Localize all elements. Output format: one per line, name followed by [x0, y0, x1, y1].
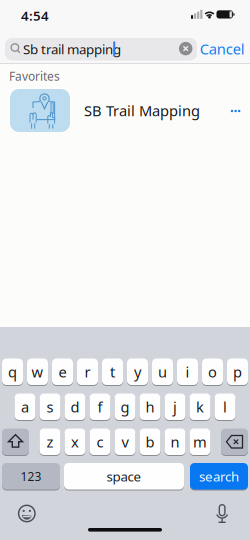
- button[interactable]: y: [127, 358, 148, 385]
- button[interactable]: x: [64, 428, 85, 455]
- button[interactable]: s: [39, 393, 60, 420]
- staticText: p: [233, 362, 242, 381]
- button[interactable]: v: [114, 428, 135, 455]
- button[interactable]: t: [102, 358, 123, 385]
- staticText: j: [173, 397, 177, 416]
- staticText: u: [158, 362, 167, 381]
- staticText: n: [170, 432, 179, 451]
- button[interactable]: h: [139, 393, 160, 420]
- button[interactable]: search: [190, 463, 248, 489]
- button[interactable]: Shift: [2, 428, 29, 455]
- staticText: q: [8, 362, 17, 381]
- button[interactable]: n: [164, 428, 185, 455]
- staticText: Sb trail mapping: [23, 40, 121, 58]
- staticText: x: [71, 432, 79, 451]
- staticText: 4:54: [21, 7, 49, 24]
- button[interactable]: p: [227, 358, 248, 385]
- button[interactable]: f: [89, 393, 110, 420]
- staticText: g: [120, 397, 129, 416]
- button[interactable]: 123: [2, 463, 60, 489]
- staticText: space: [106, 467, 141, 485]
- staticText: a: [21, 397, 29, 416]
- button[interactable]: d: [64, 393, 85, 420]
- staticText: h: [145, 397, 154, 416]
- staticText: y: [134, 362, 141, 381]
- staticText: m: [193, 432, 207, 451]
- button[interactable]: m: [189, 428, 210, 455]
- button[interactable]: j: [164, 393, 185, 420]
- button[interactable]: z: [39, 428, 60, 455]
- staticText: c: [96, 432, 103, 451]
- staticText: z: [46, 432, 53, 451]
- button[interactable]: u: [152, 358, 173, 385]
- button[interactable]: Dictate: [210, 501, 234, 525]
- staticText: b: [145, 432, 154, 451]
- staticText: i: [185, 362, 189, 381]
- button[interactable]: Delete: [221, 428, 248, 455]
- button[interactable]: More options: [228, 103, 244, 119]
- staticText: s: [46, 397, 53, 416]
- button[interactable]: space: [64, 463, 184, 489]
- staticText: v: [121, 432, 128, 451]
- button[interactable]: o: [202, 358, 223, 385]
- staticText: l: [223, 397, 227, 416]
- staticText: 123: [20, 468, 41, 484]
- staticText: SB Trail Mapping: [84, 101, 200, 120]
- button[interactable]: a: [14, 393, 35, 420]
- button[interactable]: k: [189, 393, 210, 420]
- button[interactable]: w: [27, 358, 48, 385]
- staticText: Favorites: [9, 68, 60, 84]
- button[interactable]: Cancel: [200, 39, 245, 59]
- button[interactable]: i: [177, 358, 198, 385]
- button[interactable]: Search field: [5, 38, 197, 60]
- staticText: o: [208, 362, 217, 381]
- button[interactable]: e: [52, 358, 73, 385]
- button[interactable]: Clear text: [179, 42, 192, 55]
- button[interactable]: SB Trail Mapping: [0, 0, 250, 540]
- staticText: e: [58, 362, 66, 381]
- staticText: r: [84, 362, 90, 381]
- button[interactable]: Emoji: [15, 501, 39, 525]
- staticText: w: [31, 362, 43, 381]
- staticText: search: [199, 467, 239, 485]
- button[interactable]: r: [77, 358, 98, 385]
- staticText: f: [97, 397, 102, 416]
- staticText: d: [70, 397, 79, 416]
- button[interactable]: g: [114, 393, 135, 420]
- button[interactable]: b: [139, 428, 160, 455]
- button[interactable]: c: [89, 428, 110, 455]
- staticText: Cancel: [200, 39, 245, 59]
- staticText: t: [110, 362, 115, 381]
- button[interactable]: l: [214, 393, 235, 420]
- button[interactable]: q: [2, 358, 23, 385]
- staticText: k: [196, 397, 204, 416]
